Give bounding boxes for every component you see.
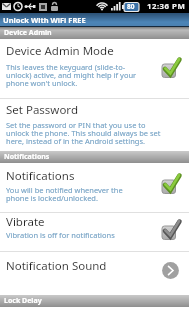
button[interactable]: Notification Sound: [0, 252, 189, 295]
staticText: Unlock With WiFi FREE: [3, 15, 86, 25]
staticText: Set the password or PIN that you use to …: [6, 120, 161, 146]
staticText: Lock Delay: [4, 296, 42, 306]
staticText: Device Admin: [4, 28, 52, 38]
staticText: Notification Sound: [6, 258, 107, 274]
staticText: Notifications: [4, 152, 50, 162]
staticText: This leaves the keyguard (slide-to- unlo…: [6, 62, 137, 88]
staticText: Notifications: [6, 168, 75, 184]
button[interactable]: Device Admin Mode: [0, 39, 189, 98]
staticText: Vibrate: [6, 214, 45, 230]
button[interactable]: Notifications: [0, 163, 189, 212]
staticText: 12:36 PM: [147, 1, 186, 12]
button[interactable]: Vibrate: [0, 213, 189, 251]
staticText: You will be notified whenever the phone …: [6, 185, 123, 203]
button[interactable]: Set Password: [0, 99, 189, 151]
staticText: Set Password: [6, 102, 78, 118]
staticText: 80: [127, 2, 135, 11]
staticText: Device Admin Mode: [6, 43, 114, 59]
staticText: Vibration is off for notifications: [6, 230, 115, 240]
